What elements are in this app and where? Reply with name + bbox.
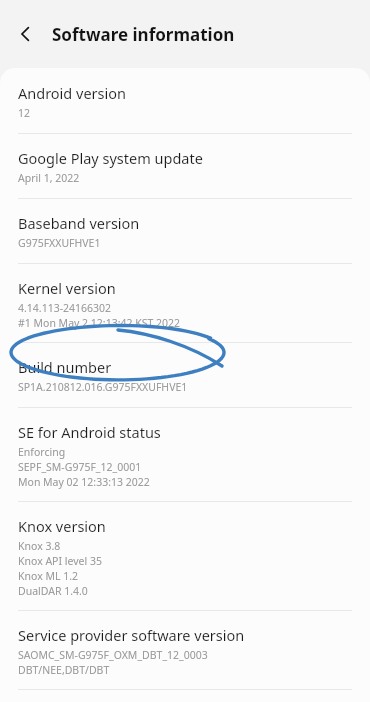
button[interactable]: Android version	[0, 68, 370, 134]
staticText: Build number	[18, 357, 112, 377]
staticText: SAOMC_SM-G975F_OXM_DBT_12_0003	[18, 648, 208, 662]
staticText: #1 Mon May 2 12:13:42 KST 2022	[18, 316, 181, 330]
staticText: G975FXXUFHVE1	[18, 236, 101, 250]
button[interactable]: SE for Android status	[0, 408, 370, 502]
staticText: Service provider software version	[18, 625, 245, 645]
staticText: 12	[18, 106, 31, 120]
staticText: Baseband version	[18, 213, 140, 233]
button[interactable]: Navigate up	[4, 12, 48, 56]
staticText: April 1, 2022	[18, 171, 80, 185]
staticText: Knox ML 1.2	[18, 569, 78, 583]
staticText: SE for Android status	[18, 422, 161, 442]
staticText: Enforcing	[18, 445, 66, 459]
staticText: 4.14.113-24166302	[18, 301, 112, 315]
button[interactable]: Knox version	[0, 502, 370, 611]
staticText: Knox 3.8	[18, 539, 61, 553]
staticText: Mon May 02 12:33:13 2022	[18, 475, 150, 489]
staticText: Google Play system update	[18, 148, 203, 168]
button[interactable]: Kernel version	[0, 264, 370, 343]
staticText: DualDAR 1.4.0	[18, 584, 88, 598]
button[interactable]: Baseband version	[0, 199, 370, 264]
staticText: Knox version	[18, 516, 106, 536]
staticText: Software information	[52, 23, 235, 46]
staticText: Android version	[18, 83, 126, 103]
button[interactable]: Build number	[0, 343, 370, 408]
staticText: SP1A.210812.016.G975FXXUFHVE1	[18, 380, 188, 394]
button[interactable]: Google Play system update	[0, 134, 370, 199]
staticText: SEPF_SM-G975F_12_0001	[18, 460, 142, 474]
staticText: DBT/NEE,DBT/DBT	[18, 663, 110, 677]
staticText: Kernel version	[18, 278, 116, 298]
staticText: Knox API level 35	[18, 554, 102, 568]
button[interactable]: Service provider software version	[0, 611, 370, 690]
